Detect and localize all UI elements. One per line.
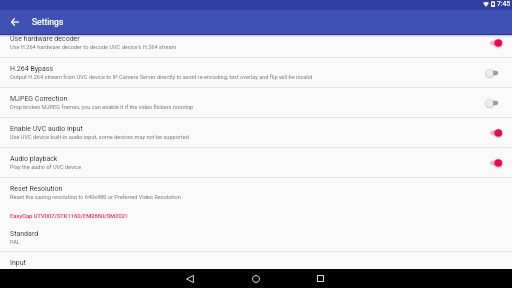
staticText: Standard (10, 230, 39, 238)
button[interactable]: Toggle on (483, 34, 505, 53)
button[interactable]: H.264 Bypass (0, 58, 512, 88)
staticText: Drop broken MJPEG frames, you can enable… (10, 104, 194, 111)
staticText: Settings (32, 17, 64, 27)
button[interactable]: MJPEG Correction (0, 88, 512, 118)
button[interactable]: Recent apps (306, 269, 334, 288)
staticText: Reset the saving resolution to 640x480 o… (10, 194, 181, 201)
staticText: Use hardware decoder (10, 35, 80, 43)
staticText: Play the audio of UVC device (10, 164, 82, 171)
staticText: Reset Resolution (10, 185, 63, 193)
button[interactable]: Back (4, 11, 26, 33)
button[interactable]: Toggle off (483, 63, 505, 83)
staticText: Use UVC device built-in audio input, som… (10, 134, 189, 141)
staticText: Output H.264 stream from UVC device to I… (10, 74, 313, 81)
button[interactable]: Enable UVC audio input (0, 118, 512, 148)
staticText: Use H.264 hardware decoder to decode UVC… (10, 44, 177, 51)
button[interactable]: Toggle on (483, 123, 505, 143)
staticText: 7:45 (497, 0, 511, 8)
staticText: Enable UVC audio input (10, 125, 83, 133)
staticText: Input (10, 259, 26, 267)
staticText: EasyCap UTV007/STK1160/EM2860/SM2021 (10, 213, 129, 220)
button[interactable]: Home (242, 269, 270, 288)
button[interactable]: Reset Resolution (0, 178, 512, 208)
staticText: PAL (10, 239, 20, 246)
staticText: MJPEG Correction (10, 95, 68, 103)
button[interactable]: Standard (0, 224, 512, 252)
button[interactable]: Back (176, 269, 204, 288)
button[interactable]: Input (0, 252, 512, 263)
button[interactable]: Toggle on (483, 153, 505, 173)
staticText: H.264 Bypass (10, 65, 54, 73)
button[interactable]: Audio playback (0, 148, 512, 178)
button[interactable]: Use hardware decoder (0, 34, 512, 58)
staticText: Audio playback (10, 155, 58, 163)
button[interactable]: Toggle off (483, 93, 505, 113)
